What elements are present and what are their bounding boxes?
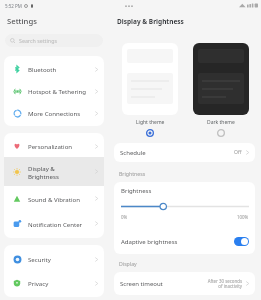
staticText: Adaptive brightness (121, 238, 178, 246)
button[interactable]: Display & (4, 157, 104, 186)
button[interactable]: Light theme (146, 129, 154, 137)
staticText: Display & (28, 164, 55, 172)
staticText: 100% (237, 214, 249, 220)
staticText: After 30 seconds of inactivity (207, 278, 242, 290)
staticText: Personalization (28, 142, 73, 150)
staticText: Notification Center (28, 220, 83, 228)
button[interactable]: Schedule (114, 143, 255, 162)
staticText: Search settings (19, 37, 57, 44)
staticText: Screen timeout (120, 280, 163, 288)
staticText: 5:52 PM (5, 3, 22, 9)
button[interactable]: Hotspot & Tethering (4, 80, 104, 102)
button[interactable]: Notification Center (4, 211, 104, 236)
staticText: Off (234, 149, 242, 156)
staticText: Bluetooth (28, 65, 57, 73)
button[interactable]: Sound & Vibration (4, 186, 104, 211)
button[interactable]: More Connections (4, 102, 104, 124)
button[interactable] (193, 43, 249, 115)
button[interactable]: Privacy (4, 271, 104, 295)
staticText: More Connections (28, 109, 81, 117)
other: Camera (125, 2, 133, 10)
staticText: Light theme (136, 119, 165, 126)
staticText: Schedule (120, 149, 146, 157)
staticText: Privacy (28, 279, 49, 287)
staticText: Dark theme (207, 119, 235, 126)
staticText: 0% (121, 214, 128, 220)
button[interactable]: Screen timeout (114, 272, 255, 295)
staticText: Sound & Vibration (28, 195, 80, 203)
button[interactable]: Adaptive brightness (114, 229, 255, 254)
button[interactable]: Dark theme (217, 129, 225, 137)
button[interactable]: Search settings (5, 34, 103, 47)
staticText: Hotspot & Tethering (28, 87, 86, 95)
staticText: Security (28, 255, 51, 263)
button[interactable]: Security (4, 247, 104, 271)
staticText: Brightness (28, 172, 59, 180)
staticText: Brightness (121, 187, 152, 195)
button[interactable]: Personalization (4, 135, 104, 157)
button[interactable] (122, 43, 178, 115)
button[interactable]: Bluetooth (4, 58, 104, 80)
staticText: Brightness (119, 170, 146, 177)
staticText: Display & Brightness (117, 17, 184, 26)
staticText: Display (119, 260, 137, 267)
staticText: Settings (7, 16, 37, 26)
